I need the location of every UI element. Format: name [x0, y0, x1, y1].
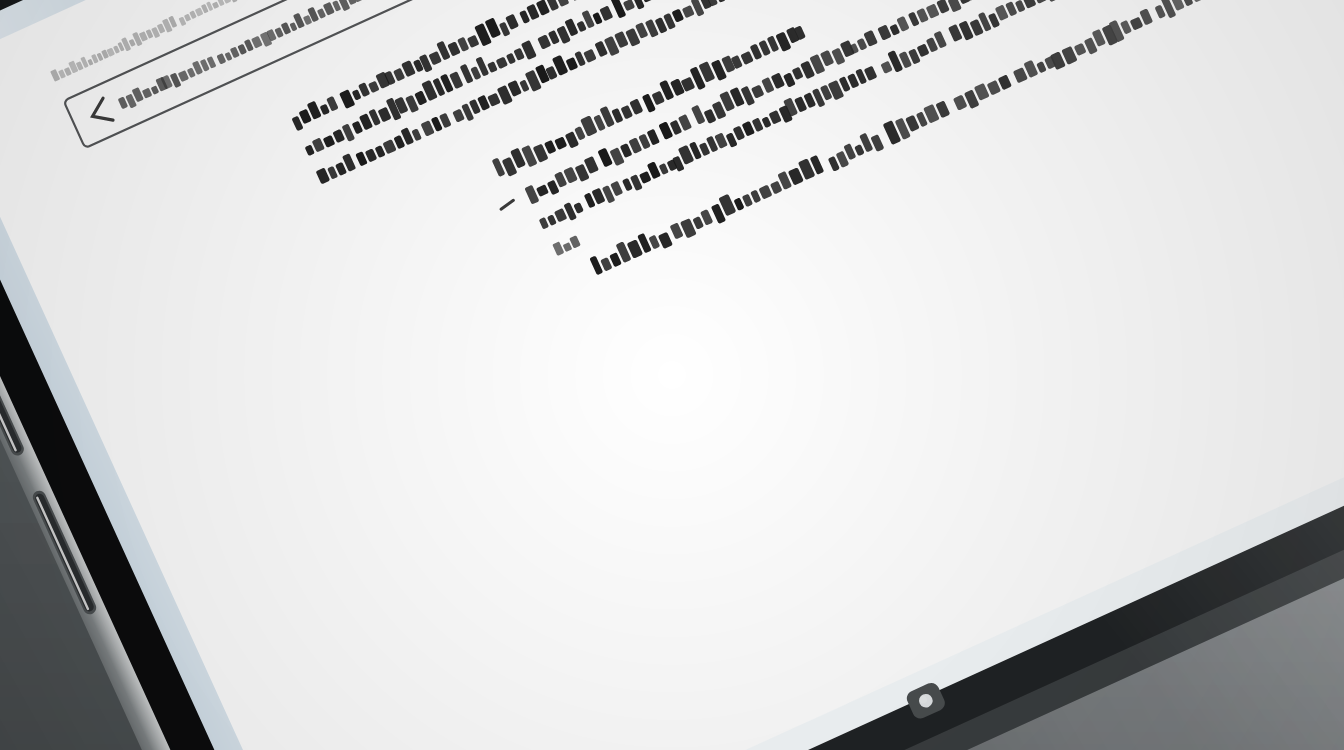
button[interactable]: Phone displaying a document screen — [0, 0, 1344, 750]
